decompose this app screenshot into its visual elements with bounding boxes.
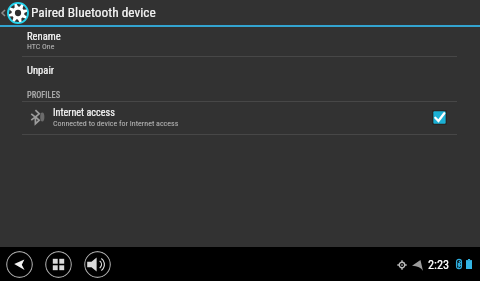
button[interactable]: Recent apps xyxy=(45,251,72,278)
button[interactable]: Volume xyxy=(84,251,111,278)
staticText: Unpair xyxy=(27,64,55,76)
staticText: Paired Bluetooth device xyxy=(31,5,156,21)
button[interactable] xyxy=(0,27,480,57)
staticText: Rename xyxy=(27,30,61,42)
staticText: PROFILES xyxy=(27,90,61,100)
staticText: Connected to device for Internet access xyxy=(53,119,179,128)
button[interactable] xyxy=(0,57,480,82)
staticText: 2:23 xyxy=(428,258,450,272)
staticText: Internet access xyxy=(53,107,115,119)
button[interactable]: Navigate up, Settings xyxy=(0,0,170,25)
button[interactable] xyxy=(0,101,480,134)
button[interactable]: Back xyxy=(6,251,33,278)
staticText: HTC One xyxy=(27,42,55,51)
button[interactable]: Internet access enabled xyxy=(432,110,447,125)
